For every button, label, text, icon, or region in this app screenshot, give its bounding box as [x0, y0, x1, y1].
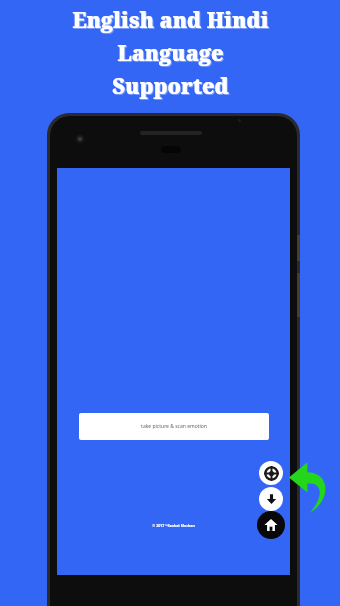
button[interactable]: Home	[257, 511, 285, 539]
staticText: Language	[117, 39, 224, 68]
button[interactable]: take picture & scan emotion	[79, 413, 269, 440]
staticText: English and Hindi	[72, 6, 269, 35]
button[interactable]: Scan settings	[259, 461, 283, 485]
staticText: Supported	[112, 72, 229, 101]
button[interactable]: Download	[259, 487, 283, 511]
staticText: take picture & scan emotion	[141, 423, 207, 430]
staticText: English and Hindi	[73, 7, 270, 36]
staticText: Supported	[113, 73, 230, 102]
staticText: © 2017 ™Sankat Mochan	[152, 523, 195, 528]
staticText: Language	[118, 40, 225, 69]
